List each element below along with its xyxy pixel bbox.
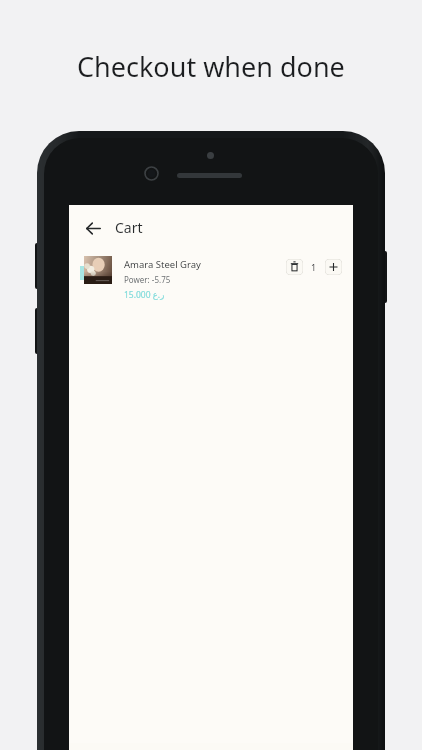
staticText: 1 xyxy=(311,261,317,273)
staticText: Checkout when done xyxy=(77,48,345,85)
button[interactable]: Amara Steel Gray xyxy=(69,250,353,307)
staticText: 15.000 ر.ع xyxy=(124,289,165,301)
staticText: Cart xyxy=(115,218,143,237)
button[interactable]: Back xyxy=(79,214,107,242)
staticText: Power: -5.75 xyxy=(124,274,171,285)
button[interactable]: Increase quantity xyxy=(325,259,342,275)
staticText: Amara Steel Gray xyxy=(124,258,201,271)
button[interactable]: Remove item xyxy=(286,259,303,275)
